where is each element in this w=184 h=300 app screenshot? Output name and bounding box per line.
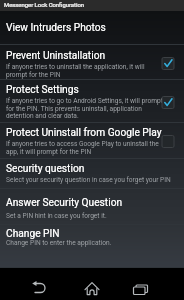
staticText: If anyone tries to access Google Play to…: [6, 140, 159, 155]
staticText: If anyone tries to go to Android Setting…: [6, 97, 163, 119]
staticText: Protect Uninstall from Google Play: [6, 127, 162, 139]
staticText: Change PIN: [6, 228, 60, 240]
staticText: Change PIN to enter the application.: [6, 239, 112, 247]
staticText: If anyone tries to uninstall the applica…: [6, 63, 145, 78]
staticText: Answer Security Question: [6, 197, 123, 209]
staticText: Set a PIN hint in case you forget it.: [6, 212, 107, 220]
button[interactable]: Protect Uninstall from Google Play: [0, 123, 184, 159]
button[interactable]: [26, 274, 52, 300]
staticText: View Intruders Photos: [6, 22, 106, 34]
staticText: Select your security question in case yo…: [6, 176, 171, 184]
button[interactable]: Answer Security Question: [0, 189, 184, 225]
button[interactable]: Prevent Uninstallation: [0, 45, 184, 80]
button[interactable]: Change PIN: [0, 225, 184, 268]
staticText: Prevent Uninstallation: [6, 50, 106, 62]
button[interactable]: [79, 274, 105, 300]
staticText: Security question: [6, 163, 85, 175]
button[interactable]: Protect Settings: [0, 80, 184, 123]
staticText: Messenger Lock Configuration: [4, 2, 84, 9]
button[interactable]: View Intruders Photos: [0, 11, 184, 45]
button[interactable]: [127, 274, 153, 300]
button[interactable]: Security question: [0, 159, 184, 189]
staticText: Protect Settings: [6, 84, 79, 96]
